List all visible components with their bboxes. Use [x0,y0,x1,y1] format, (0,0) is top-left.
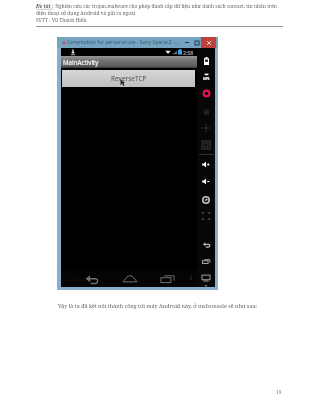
staticText: 2:58 [183,49,194,56]
staticText: MainActivity [63,58,99,66]
button[interactable]: Recents [159,270,176,287]
button[interactable]: Rotate [197,193,215,206]
staticText: ReverseTCP [111,74,147,83]
staticText: for personal use [62,277,95,283]
button[interactable]: Add [197,121,215,134]
staticText: Nghiên cứu các trojan,malware cho phép đ… [54,3,277,10]
staticText: Genymotion for personal use - Sony Xperi… [67,39,179,46]
staticText: Vậy là ta đã kết nối thành công tới máy … [58,302,258,309]
button[interactable]: Home [121,270,138,287]
button[interactable]: Keyboard [197,271,215,284]
button[interactable]: Recents key [197,255,215,268]
button[interactable]: ReverseTCP [62,70,195,87]
staticText: GPS [203,76,210,81]
button[interactable]: Menu [187,274,195,282]
staticText: Đề tài : [36,3,54,10]
button[interactable]: GPS [197,71,215,83]
staticText: điện thoại sử dụng Android và gửi ra ngo… [36,10,136,17]
button[interactable]: Back key [197,238,215,251]
staticText: 19 [276,389,282,396]
button[interactable]: Screenshot [197,138,215,151]
button[interactable]: Close [201,37,216,48]
staticText: SVTT : Vũ Thanh Hiếu [36,17,87,24]
button[interactable]: Back [83,270,100,287]
button[interactable]: Lock [197,105,215,118]
button[interactable]: Volume down [197,175,215,188]
button[interactable]: Fullscreen [197,209,215,222]
button[interactable]: Maximize [192,37,201,48]
button[interactable]: Battery [197,54,215,67]
button[interactable]: Volume up [197,158,215,171]
button[interactable]: Record [197,87,215,100]
button[interactable]: Minimize [181,37,192,48]
